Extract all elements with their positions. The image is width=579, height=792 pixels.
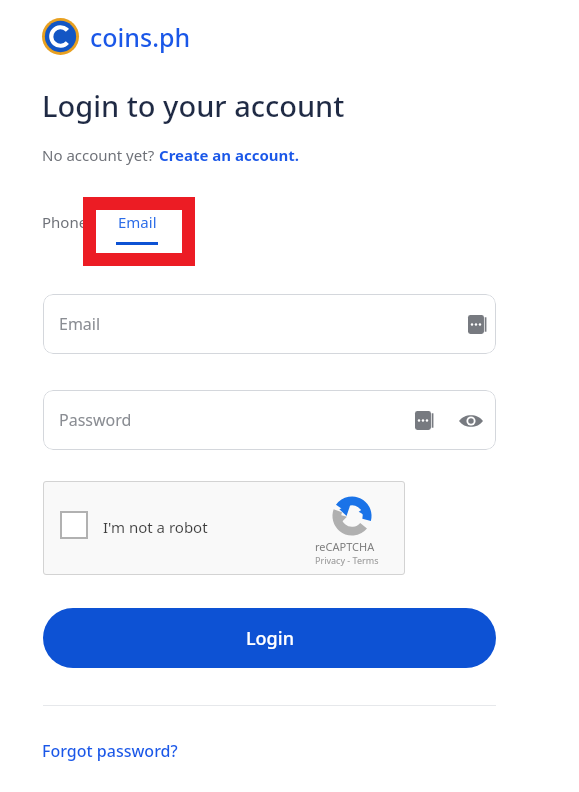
staticText: Privacy - Terms [315, 554, 379, 566]
staticText: No account yet? [42, 145, 159, 165]
button[interactable]: Create an account. [159, 145, 300, 165]
staticText: Create an account. [159, 145, 300, 165]
button[interactable]: Login [43, 608, 496, 668]
staticText: coins.ph [90, 20, 191, 54]
button[interactable]: Autofill [415, 411, 434, 430]
other: coins.ph logo [42, 18, 79, 55]
staticText: Login [246, 626, 294, 651]
button[interactable]: Email [116, 212, 158, 245]
button[interactable]: I'm not a robot [43, 481, 405, 575]
button[interactable]: Phone [42, 212, 88, 232]
staticText: Login to your account [42, 86, 345, 125]
staticText: Forgot password? [42, 740, 178, 762]
button[interactable]: Email [43, 294, 496, 354]
button[interactable]: Forgot password? [42, 740, 178, 762]
button[interactable]: Show password [458, 408, 484, 434]
staticText: Phone [42, 212, 88, 232]
staticText: Email [118, 212, 157, 232]
staticText: Password [59, 409, 132, 431]
button[interactable]: Password [43, 390, 496, 450]
button[interactable]: coins.ph logo [42, 18, 191, 55]
button[interactable]: Autofill [468, 315, 487, 334]
staticText: I'm not a robot [103, 517, 208, 537]
staticText: reCAPTCHA [315, 539, 375, 554]
staticText: Email [59, 313, 101, 335]
